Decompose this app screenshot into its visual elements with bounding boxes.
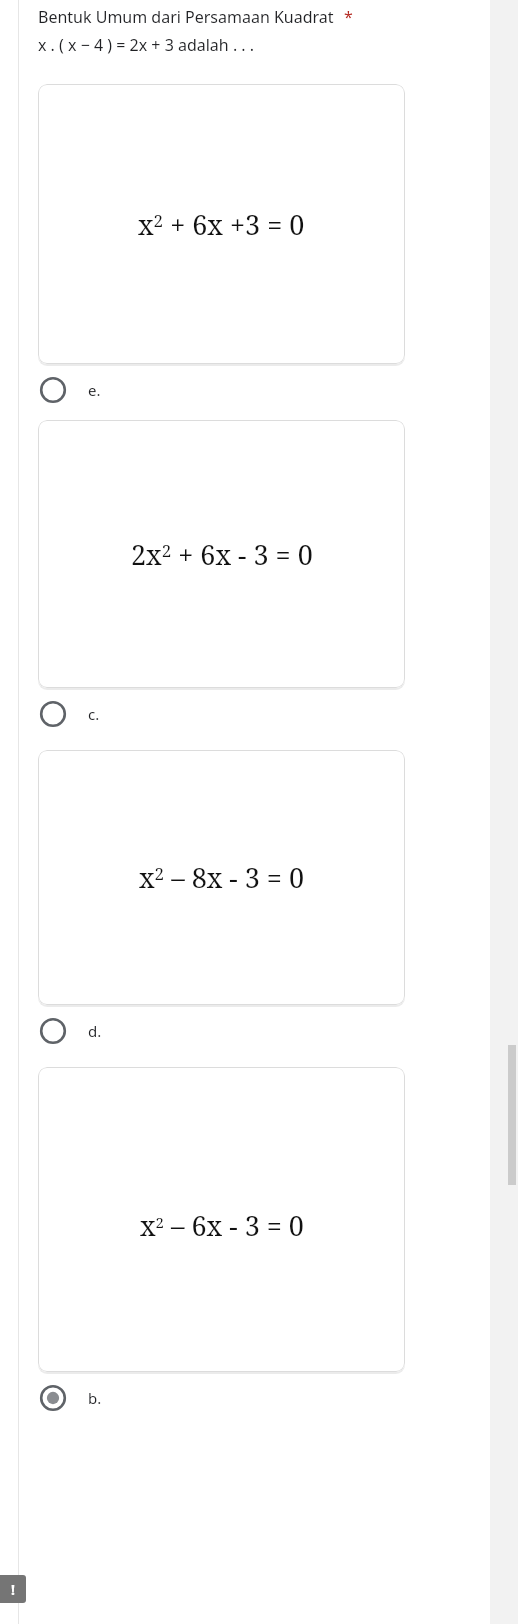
staticText: x2 – 6x - 3 = 0: [140, 1207, 304, 1244]
button[interactable]: e.: [0, 364, 518, 416]
staticText: x . ( x − 4 ) = 2x + 3 adalah . . .: [38, 34, 255, 56]
staticText: b.: [88, 1388, 102, 1408]
staticText: x2 – 8x - 3 = 0: [139, 859, 305, 896]
staticText: x2 + 6x +3 = 0: [138, 206, 305, 243]
staticText: Bentuk Umum dari Persamaan Kuadrat: [38, 6, 334, 28]
button[interactable]: Answer option x squared plus 6x plus 3 e…: [38, 84, 405, 364]
button[interactable]: Answer option 2x squared plus 6x minus 3…: [38, 420, 405, 688]
staticText: *: [344, 6, 353, 28]
button[interactable]: b.: [0, 1372, 518, 1424]
button[interactable]: Answer option x squared minus 6x minus 3…: [38, 1067, 405, 1372]
staticText: d.: [88, 1021, 102, 1041]
staticText: e.: [88, 380, 101, 400]
button[interactable]: Answer option x squared minus 8x minus 3…: [38, 750, 405, 1005]
button[interactable]: Required question warning: [0, 1575, 26, 1603]
button[interactable]: c.: [0, 688, 518, 740]
staticText: 2x2 + 6x - 3 = 0: [131, 536, 313, 573]
button[interactable]: d.: [0, 1005, 518, 1057]
staticText: !: [11, 1580, 15, 1599]
staticText: c.: [88, 704, 100, 724]
